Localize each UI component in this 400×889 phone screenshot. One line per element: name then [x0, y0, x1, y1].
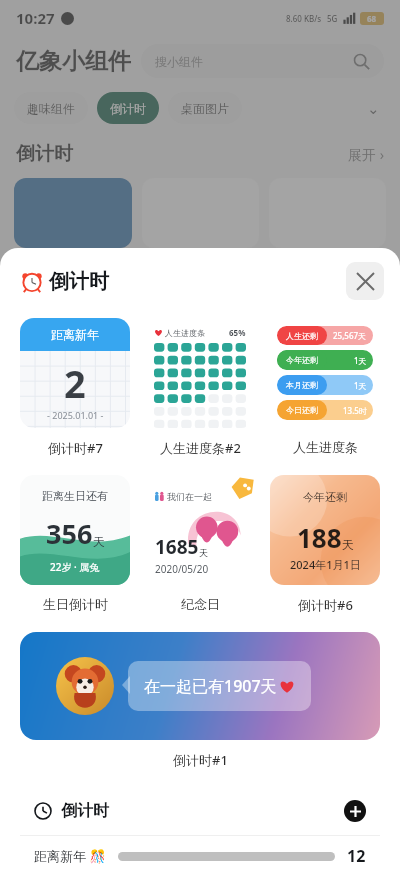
staticText: 倒计时: [49, 269, 109, 294]
staticText: 356: [46, 515, 93, 552]
staticText: 天: [199, 547, 208, 558]
button[interactable]: 距离生日还有: [20, 475, 130, 585]
staticText: 倒计时#7: [48, 439, 103, 457]
staticText: 5G: [327, 13, 338, 24]
staticText: 8.60 KB/s: [286, 13, 322, 24]
button[interactable]: 今年还剩: [270, 475, 380, 585]
staticText: 人生进度条: [165, 328, 205, 338]
button[interactable]: 人生进度条: [154, 327, 246, 419]
staticText: 188: [297, 520, 342, 555]
button[interactable]: Add: [344, 800, 366, 822]
staticText: 今日还剩: [286, 405, 318, 415]
staticText: 65%: [229, 327, 246, 338]
staticText: 生日倒计时: [43, 596, 108, 612]
button[interactable]: 我们在一起: [145, 482, 248, 585]
staticText: 趣味组件: [27, 101, 75, 116]
staticText: 22岁 · 属兔: [50, 560, 100, 574]
staticText: 我们在一起: [167, 491, 212, 502]
staticText: 在一起已有1907天: [144, 675, 277, 697]
button[interactable]: Close: [346, 262, 384, 300]
button[interactable]: 在一起已有1907天: [20, 632, 380, 740]
staticText: 桌面图片: [181, 101, 229, 116]
staticText: 本月还剩: [286, 380, 318, 390]
button[interactable]: 人生还剩: [277, 326, 373, 420]
staticText: - 2025.01.01 -: [47, 409, 104, 421]
staticText: ⌄: [367, 100, 380, 117]
staticText: 12: [347, 845, 366, 867]
button[interactable]: 距离新年: [20, 318, 130, 428]
staticText: 倒计时#6: [298, 596, 353, 614]
staticText: 10:27: [16, 8, 55, 28]
staticText: 68: [367, 13, 377, 24]
staticText: 人生还剩: [286, 331, 318, 341]
staticText: 倒计时: [110, 101, 146, 116]
staticText: 距离新年 🎊: [34, 847, 106, 865]
staticText: 人生进度条#2: [160, 439, 241, 457]
staticText: 纪念日: [181, 596, 220, 612]
staticText: 距离新年: [51, 327, 99, 342]
staticText: 今年还剩: [286, 355, 318, 365]
staticText: 1天: [354, 355, 367, 366]
staticText: 2: [64, 357, 86, 409]
staticText: 倒计时: [16, 142, 73, 166]
staticText: 2024年1月1日: [290, 557, 361, 572]
staticText: 25,567天: [333, 330, 367, 341]
staticText: 1天: [354, 380, 367, 391]
button[interactable]: 倒计时: [20, 787, 380, 835]
staticText: 倒计时: [61, 801, 109, 821]
staticText: 天: [93, 534, 105, 549]
staticText: 倒计时#1: [173, 751, 228, 769]
staticText: 13.5时: [343, 405, 367, 416]
staticText: 今年还剩: [303, 490, 347, 504]
staticText: 距离生日还有: [42, 489, 108, 503]
staticText: 2020/05/20: [155, 562, 209, 576]
staticText: 搜小组件: [155, 54, 203, 69]
staticText: 1685: [155, 534, 199, 560]
staticText: 人生进度条: [293, 439, 358, 455]
staticText: 天: [342, 537, 354, 552]
staticText: 展开 ›: [348, 145, 384, 164]
staticText: 亿象小组件: [16, 47, 131, 76]
